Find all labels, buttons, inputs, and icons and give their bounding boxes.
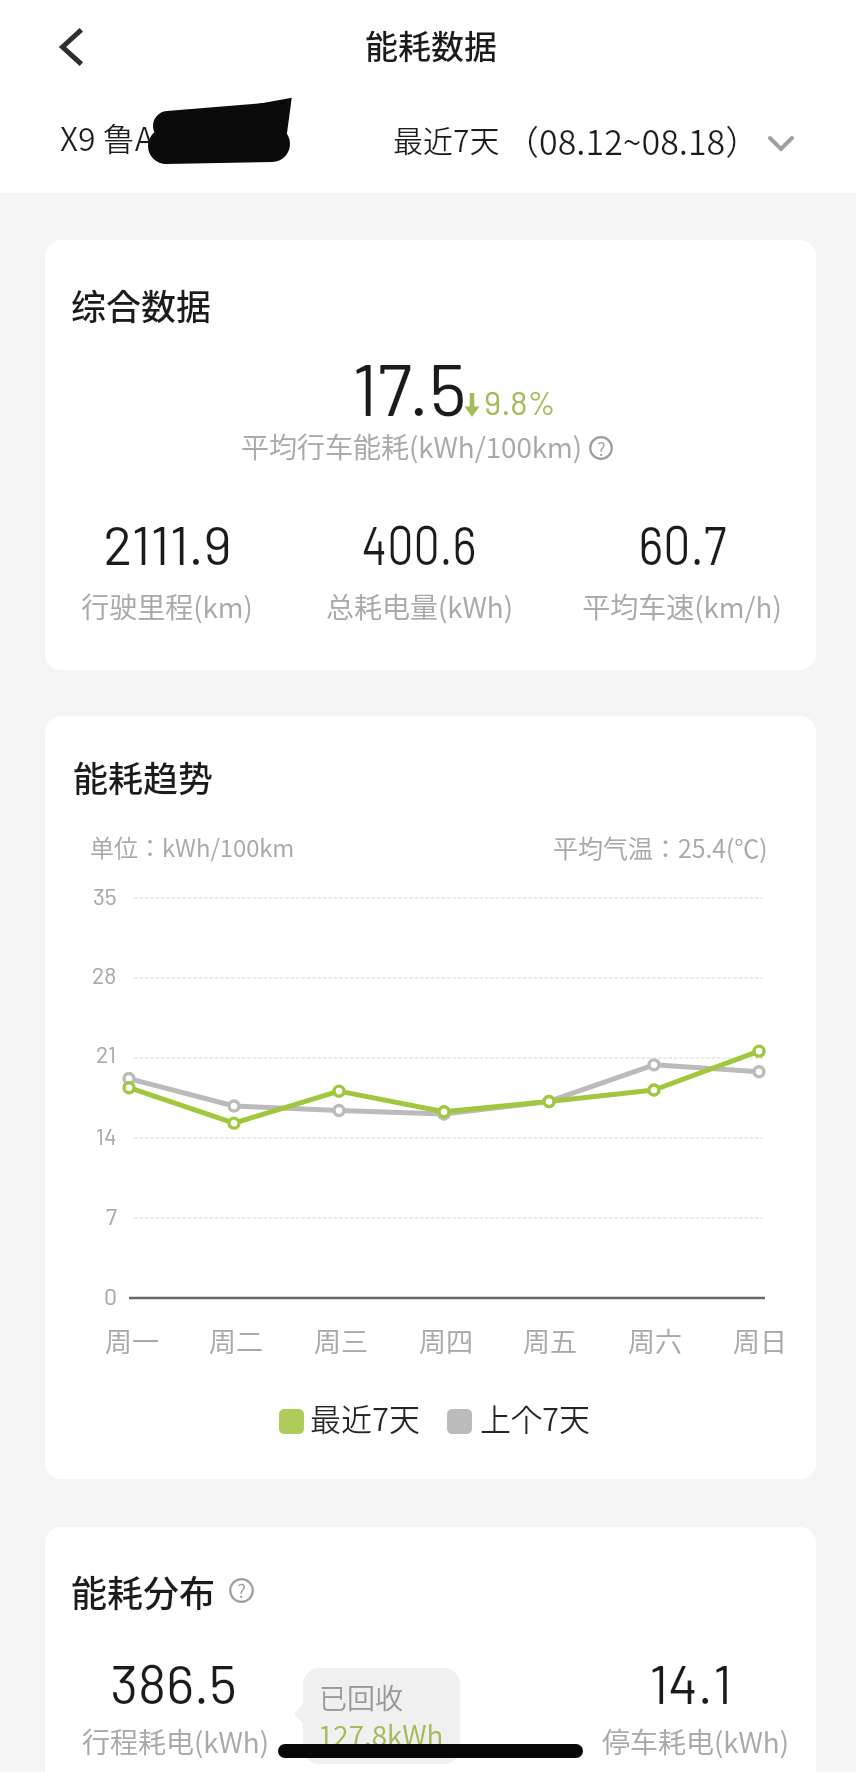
staticText: 周五 <box>523 1321 577 1360</box>
staticText: 综合数据 <box>71 279 212 330</box>
staticText: 28 <box>92 961 117 989</box>
staticText: 平均车速(km/h) <box>582 586 782 627</box>
staticText: 386.5 <box>110 1650 237 1715</box>
staticText: ? <box>237 1577 246 1602</box>
button[interactable]: Back <box>36 12 106 82</box>
staticText: 127.8kWh <box>318 1714 444 1755</box>
button[interactable]: Help <box>229 1578 254 1603</box>
staticText: 2111.9 <box>103 511 232 576</box>
staticText: X9 鲁A <box>60 114 154 160</box>
staticText: 平均气温：25.4(℃) <box>553 829 768 865</box>
staticText: 能耗趋势 <box>73 751 214 802</box>
staticText: 单位：kWh/100km <box>90 829 295 864</box>
staticText: 7 <box>106 1202 117 1230</box>
staticText: 能耗数据 <box>365 21 497 69</box>
button[interactable]: 最近7天 <box>390 110 800 172</box>
staticText: 周三 <box>314 1321 368 1360</box>
staticText: 最近7天 <box>310 1395 421 1440</box>
staticText: 17.5 <box>352 343 467 431</box>
button[interactable]: Help <box>589 436 613 460</box>
staticText: 400.6 <box>361 511 477 576</box>
staticText: 35 <box>93 882 117 910</box>
staticText: 9.8% <box>484 382 556 422</box>
staticText: 已回收 <box>319 1677 404 1718</box>
staticText: 周六 <box>628 1321 682 1360</box>
staticText: 60.7 <box>638 511 726 576</box>
staticText: 行驶里程(km) <box>81 586 253 627</box>
staticText: 21 <box>96 1040 117 1068</box>
staticText: 周二 <box>209 1321 263 1360</box>
staticText: 行程耗电(kWh) <box>82 1721 269 1762</box>
staticText: 周一 <box>105 1321 159 1360</box>
staticText: 能耗分布 <box>71 1565 216 1617</box>
staticText: 停车耗电(kWh) <box>602 1721 789 1762</box>
staticText: 周四 <box>419 1321 473 1360</box>
staticText: 总耗电量(kWh) <box>326 586 513 627</box>
staticText: 14 <box>96 1122 117 1150</box>
staticText: 平均行车能耗(kWh/100km) <box>241 426 583 467</box>
staticText: 14.1 <box>649 1650 732 1715</box>
staticText: 上个7天 <box>480 1395 591 1440</box>
staticText: ? <box>597 435 606 459</box>
staticText: （08.12~08.18） <box>505 116 760 165</box>
staticText: 周日 <box>733 1321 787 1360</box>
staticText: 最近7天 <box>393 117 500 160</box>
staticText: 0 <box>104 1282 117 1310</box>
